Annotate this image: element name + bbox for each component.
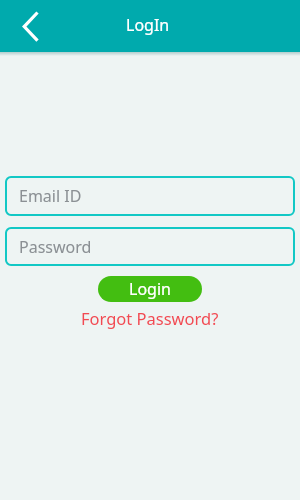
button[interactable]: Email ID: [5, 176, 295, 216]
button[interactable]: Password: [5, 227, 295, 266]
button[interactable]: Forgot Password?: [81, 307, 219, 329]
button[interactable]: [12, 8, 48, 44]
staticText: Email ID: [19, 185, 82, 207]
staticText: Login: [129, 278, 171, 300]
staticText: LogIn: [126, 14, 170, 36]
button[interactable]: Login: [98, 276, 202, 302]
staticText: Password: [19, 236, 92, 258]
